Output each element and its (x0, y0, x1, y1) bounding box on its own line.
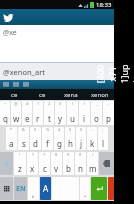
staticText: 3 (59, 101, 62, 106)
button[interactable]: Attach (3, 82, 9, 88)
staticText: ? (32, 152, 34, 157)
button[interactable]: Symbols (0, 177, 13, 200)
button[interactable]: # (22, 101, 32, 125)
staticText: ) (84, 101, 86, 106)
button[interactable]: ( (67, 101, 78, 125)
button[interactable]: Twitter (2, 11, 15, 24)
staticText: g (57, 138, 62, 149)
staticText: @xenon_art (3, 67, 45, 77)
staticText: . (84, 188, 87, 199)
button[interactable]: A (40, 177, 51, 200)
button[interactable]: ? (27, 152, 38, 175)
staticText: xena (64, 91, 78, 99)
staticText: 9 (67, 152, 70, 157)
button[interactable]: 8 (51, 152, 62, 175)
button[interactable]: % (42, 127, 53, 150)
staticText: 4 (58, 127, 61, 132)
button[interactable]: & (18, 127, 29, 150)
button[interactable]: - (103, 101, 114, 125)
button[interactable]: 2 (44, 101, 54, 125)
button[interactable]: _ (91, 101, 102, 125)
staticText: EN (16, 184, 26, 194)
staticText: o (94, 113, 99, 124)
staticText: h (68, 138, 73, 149)
staticText: ce (39, 91, 46, 99)
button[interactable]: Enter (91, 177, 107, 200)
staticText: xenon (91, 91, 109, 99)
button[interactable]: Attach (23, 82, 29, 88)
staticText: j (80, 138, 83, 149)
staticText: b (66, 163, 71, 174)
staticText: @ (14, 101, 18, 106)
button[interactable]: . (80, 177, 90, 200)
staticText: ~ (4, 101, 7, 106)
staticText: f (46, 138, 49, 149)
staticText: : (91, 127, 93, 132)
staticText: 7 (43, 152, 46, 157)
staticText: r (36, 113, 40, 124)
staticText: & (22, 127, 25, 132)
staticText: y (58, 113, 63, 124)
staticText: 18:33 (96, 1, 112, 9)
staticText: w (13, 113, 20, 124)
staticText: z (18, 163, 22, 174)
button[interactable]: Shift (0, 152, 13, 175)
staticText: v (54, 163, 59, 174)
button[interactable]: xena (56, 89, 85, 100)
staticText: 2 (48, 101, 51, 106)
button[interactable]: ~ (0, 101, 10, 125)
staticText: q (3, 113, 8, 124)
button[interactable]: 7 (39, 152, 50, 175)
staticText: k (90, 138, 95, 149)
button[interactable]: @xenon_art (0, 63, 114, 80)
staticText: e (25, 113, 30, 124)
staticText: [400x711]upic.me (94, 64, 134, 84)
staticText: 5 (69, 127, 72, 132)
staticText: ; (102, 127, 104, 132)
button[interactable]: 1 (33, 101, 43, 125)
button[interactable]: @ (11, 101, 21, 125)
button[interactable]: Attach (13, 82, 19, 88)
staticText: m (89, 163, 97, 174)
button[interactable]: 9 (63, 152, 74, 175)
button[interactable]: ! (14, 152, 26, 175)
staticText: 1 (37, 101, 40, 106)
button[interactable]: 4 (54, 127, 64, 150)
button[interactable]: Close (108, 177, 114, 200)
staticText: ce (11, 91, 18, 99)
staticText: % (46, 127, 50, 132)
staticText: a (9, 138, 14, 149)
staticText: 8 (55, 152, 58, 157)
staticText: 6 (80, 127, 83, 132)
staticText: u (70, 113, 75, 124)
staticText: n (78, 163, 83, 174)
button[interactable]: 0 (75, 152, 86, 175)
button[interactable]: , (28, 177, 39, 200)
button[interactable]: xenon (85, 89, 114, 100)
button[interactable]: 6 (76, 127, 86, 150)
button[interactable]: Backspace (99, 152, 114, 175)
button[interactable]: / (87, 152, 98, 175)
staticText: A (43, 183, 49, 194)
staticText: c (43, 163, 47, 174)
staticText: 0 (79, 152, 82, 157)
staticText: / (92, 152, 94, 157)
button[interactable]: $ (30, 127, 41, 150)
button[interactable]: ; (98, 127, 108, 150)
staticText: l (102, 138, 105, 149)
staticText: i (83, 113, 86, 124)
staticText: , (32, 188, 35, 199)
button[interactable]: * (6, 127, 17, 150)
button[interactable]: ) (79, 101, 90, 125)
button[interactable]: Language (14, 177, 27, 200)
staticText: d (33, 138, 38, 149)
button[interactable]: ce (28, 89, 56, 100)
button[interactable]: 3 (55, 101, 66, 125)
button[interactable]: 5 (65, 127, 75, 150)
staticText: _ (96, 101, 98, 106)
staticText: s (22, 138, 26, 149)
button[interactable]: : (87, 127, 97, 150)
button[interactable]: ce (0, 89, 28, 100)
staticText: * (10, 127, 13, 132)
